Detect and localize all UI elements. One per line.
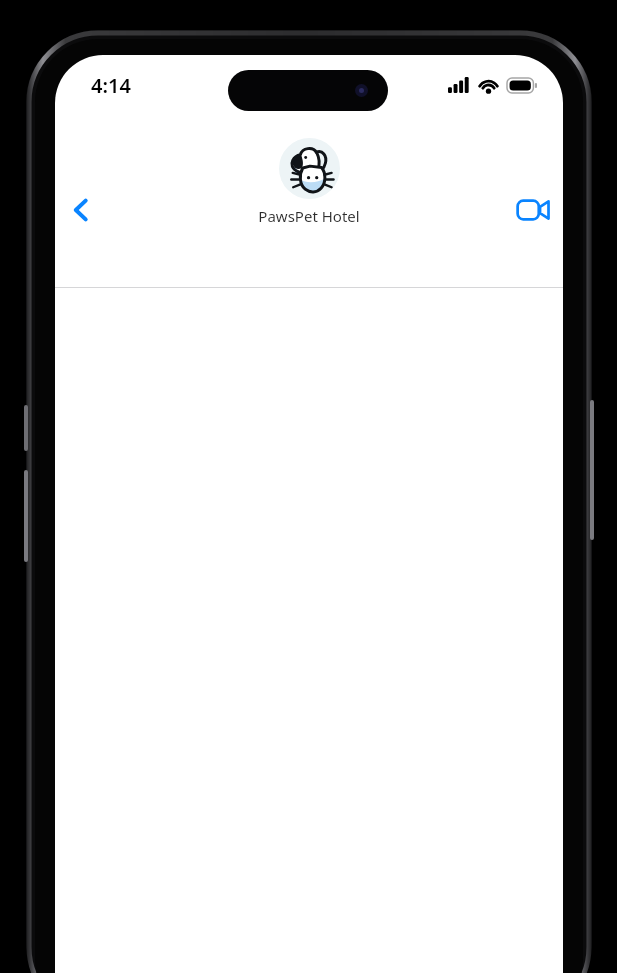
staticText: 4:14 — [91, 72, 131, 99]
button[interactable]: Back — [57, 186, 105, 234]
staticText: PawsPet Hotel — [258, 206, 360, 226]
button[interactable]: PawsPet Hotel — [258, 138, 360, 226]
button[interactable]: Video call — [509, 186, 557, 234]
